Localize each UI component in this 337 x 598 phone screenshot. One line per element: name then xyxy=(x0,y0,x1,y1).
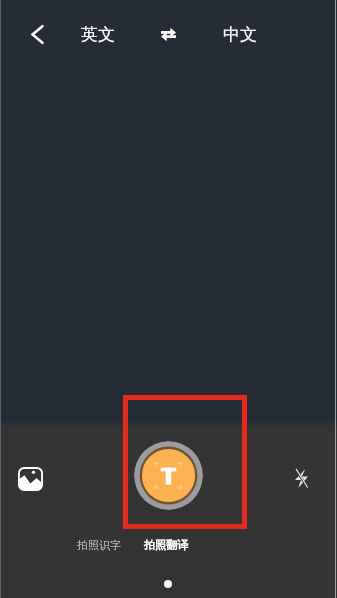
staticText: 拍照识字 xyxy=(77,538,121,552)
staticText: 拍照翻译 xyxy=(144,538,188,552)
button[interactable]: Open gallery xyxy=(8,456,53,501)
button[interactable]: 拍照翻译 xyxy=(138,533,194,557)
button[interactable]: 中文 xyxy=(215,12,265,56)
button[interactable]: Flash off xyxy=(279,456,323,500)
staticText: 英文 xyxy=(81,24,115,45)
button[interactable]: 拍照识字 xyxy=(71,533,127,557)
button[interactable]: 英文 xyxy=(73,12,123,56)
button[interactable]: Back xyxy=(15,12,59,56)
button[interactable]: Swap languages xyxy=(146,12,190,56)
staticText: 中文 xyxy=(223,24,257,45)
button[interactable]: Take photo and translate xyxy=(134,441,203,510)
